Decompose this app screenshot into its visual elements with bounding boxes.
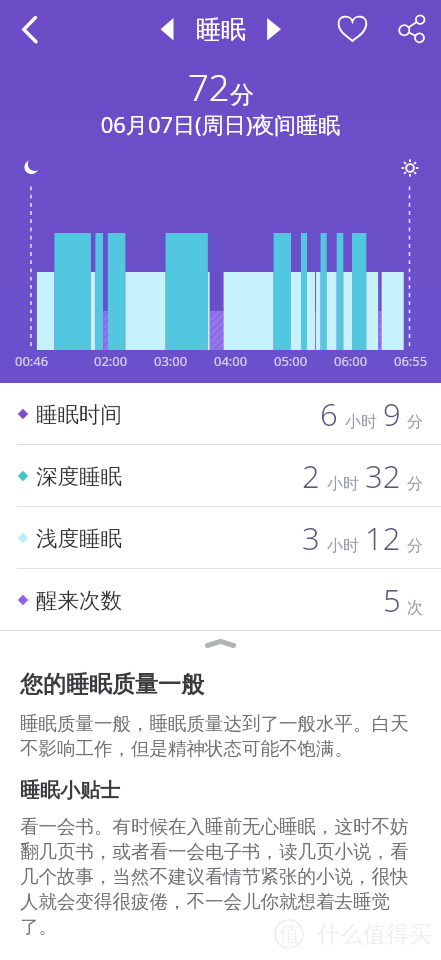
staticText: 什么值得买 xyxy=(317,920,432,949)
staticText: 03:00 xyxy=(154,352,188,370)
staticText: 睡眠 xyxy=(196,14,246,45)
button[interactable]: Expand xyxy=(200,633,241,651)
staticText: 小时 xyxy=(327,536,359,556)
staticText: 06月07日(周日)夜间睡眠 xyxy=(0,109,441,139)
button[interactable]: 睡眠 xyxy=(190,8,252,50)
button[interactable]: Share xyxy=(391,8,434,51)
staticText: 32 xyxy=(365,455,401,497)
button[interactable]: 醒来次数 xyxy=(0,569,441,631)
button[interactable]: Back xyxy=(6,6,52,52)
staticText: 12 xyxy=(365,517,401,559)
staticText: 72 xyxy=(188,62,230,112)
staticText: 9 xyxy=(383,393,401,435)
staticText: 小时 xyxy=(327,474,359,494)
staticText: 睡眠时间 xyxy=(36,401,122,428)
staticText: 06:00 xyxy=(334,352,368,370)
staticText: 分 xyxy=(407,536,423,556)
button[interactable]: Previous day xyxy=(153,11,182,47)
staticText: 分 xyxy=(407,412,423,432)
staticText: 分 xyxy=(230,80,254,110)
staticText: 05:00 xyxy=(274,352,308,370)
staticText: 看一会书。有时候在入睡前无心睡眠，这时不妨翻几页书，或者看一会电子书，读几页小说… xyxy=(20,815,420,938)
staticText: 醒来次数 xyxy=(36,587,122,614)
staticText: 值 xyxy=(279,921,300,947)
staticText: 分 xyxy=(407,474,423,494)
button[interactable]: 深度睡眠 xyxy=(0,445,441,507)
button[interactable]: Next day xyxy=(259,11,288,47)
staticText: 次 xyxy=(407,598,423,618)
staticText: 04:00 xyxy=(214,352,248,370)
button[interactable]: Favorite xyxy=(331,7,374,50)
button[interactable]: 睡眠时间 xyxy=(0,383,441,445)
staticText: 5 xyxy=(383,579,401,621)
staticText: 00:46 xyxy=(15,352,49,370)
staticText: 2 xyxy=(302,455,320,497)
staticText: 02:00 xyxy=(94,352,128,370)
staticText: 6 xyxy=(320,393,338,435)
staticText: 您的睡眠质量一般 xyxy=(20,670,204,699)
staticText: 06:55 xyxy=(394,352,428,370)
staticText: 3 xyxy=(302,517,320,559)
staticText: 睡眠质量一般，睡眠质量达到了一般水平。白天不影响工作，但是精神状态可能不饱满。 xyxy=(20,712,420,760)
button[interactable]: 浅度睡眠 xyxy=(0,507,441,569)
staticText: 浅度睡眠 xyxy=(36,525,122,552)
staticText: 小时 xyxy=(345,412,377,432)
staticText: 深度睡眠 xyxy=(36,463,122,490)
staticText: 睡眠小贴士 xyxy=(20,778,120,803)
